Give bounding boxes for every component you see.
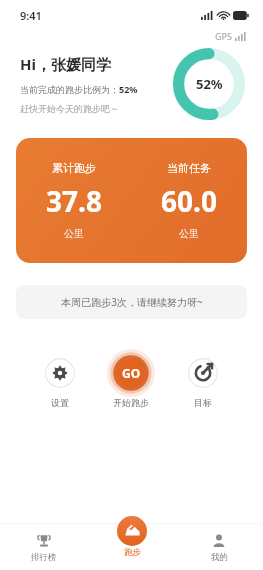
staticText: 当前任务 (167, 161, 211, 175)
button[interactable]: GO (95, 349, 167, 408)
staticText: 52% (119, 83, 138, 95)
button[interactable]: 本周已跑步3次，请继续努力呀~ (16, 285, 247, 319)
staticText: 60.0 (161, 182, 217, 220)
staticText: Hi，张媛同学 (20, 54, 111, 74)
button[interactable]: 设置 (24, 349, 95, 408)
staticText: 当前完成的跑步比例为： (20, 84, 119, 95)
staticText: 排行榜 (31, 552, 57, 563)
staticText: 我的 (211, 552, 228, 563)
staticText: 52% (196, 75, 223, 93)
staticText: 目标 (194, 397, 212, 408)
staticText: GO (122, 365, 141, 381)
staticText: 本周已跑步3次，请继续努力呀~ (61, 295, 203, 309)
staticText: 公里 (64, 227, 84, 240)
button[interactable]: 排行榜 (0, 525, 87, 570)
staticText: 公里 (179, 227, 199, 240)
staticText: 跑步 (124, 547, 141, 558)
staticText: 9:41 (20, 8, 42, 23)
button[interactable]: 跑步 (117, 525, 147, 566)
staticText: 37.8 (46, 182, 102, 220)
staticText: 开始跑步 (113, 397, 149, 408)
staticText: GPS (215, 30, 232, 42)
staticText: 设置 (51, 397, 69, 408)
staticText: 赶快开始今天的跑步吧～ (20, 103, 119, 114)
button[interactable]: 累计跑步 (16, 138, 247, 263)
button[interactable]: 目标 (167, 349, 239, 408)
button[interactable]: 我的 (175, 525, 263, 570)
staticText: 累计跑步 (52, 161, 96, 175)
